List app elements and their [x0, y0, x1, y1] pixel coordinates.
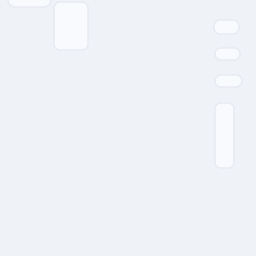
button[interactable]: Option one: [214, 20, 239, 34]
button[interactable]: Option three: [215, 75, 242, 87]
button[interactable]: Featured card: [54, 2, 88, 50]
button[interactable]: Card: [8, 0, 51, 7]
button[interactable]: Slider: [215, 103, 234, 168]
button[interactable]: Option two: [215, 48, 240, 60]
